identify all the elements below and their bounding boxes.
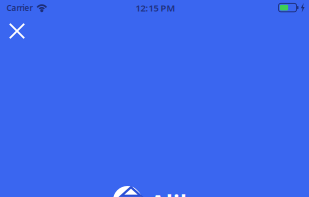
staticText: Alike xyxy=(150,188,208,197)
button[interactable]: Close xyxy=(1,15,33,47)
staticText: Carrier xyxy=(6,3,32,13)
staticText: 12:15 PM xyxy=(135,2,175,14)
